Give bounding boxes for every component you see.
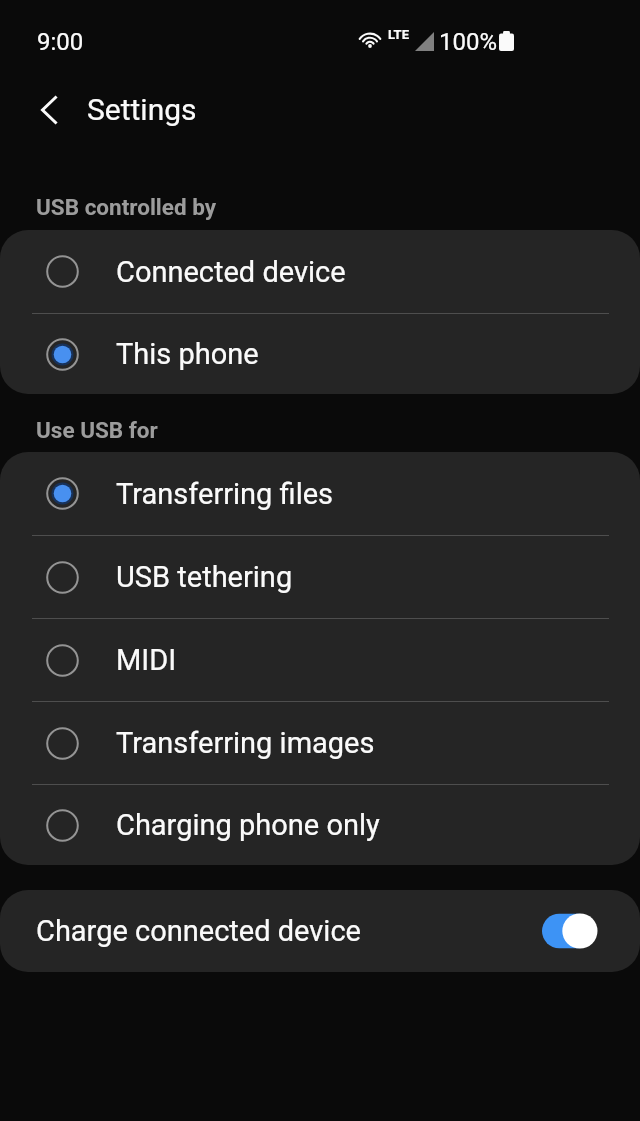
button[interactable]: Back: [13, 74, 85, 146]
staticText: Use USB for: [36, 417, 158, 443]
staticText: 9:00: [37, 28, 84, 56]
button[interactable]: Connected device: [0, 230, 640, 313]
button[interactable]: MIDI: [0, 619, 640, 701]
button[interactable]: This phone: [0, 314, 640, 394]
button[interactable]: Charging phone only: [0, 785, 640, 865]
staticText: Transferring images: [116, 726, 375, 760]
staticText: 100%: [439, 28, 498, 56]
button[interactable]: Transferring files: [0, 452, 640, 535]
staticText: Charge connected device: [36, 914, 361, 948]
staticText: Charging phone only: [116, 808, 380, 842]
button[interactable]: Charge connected device: [0, 890, 640, 972]
button[interactable]: Transferring images: [0, 702, 640, 784]
staticText: MIDI: [116, 643, 177, 677]
staticText: This phone: [116, 337, 259, 371]
button[interactable]: Charge connected device toggle, on: [542, 913, 598, 949]
staticText: Settings: [87, 92, 197, 127]
staticText: USB tethering: [116, 560, 293, 594]
staticText: LTE: [388, 27, 409, 42]
staticText: Transferring files: [116, 477, 334, 511]
staticText: Connected device: [116, 255, 346, 289]
button[interactable]: USB tethering: [0, 536, 640, 618]
staticText: USB controlled by: [36, 194, 217, 220]
